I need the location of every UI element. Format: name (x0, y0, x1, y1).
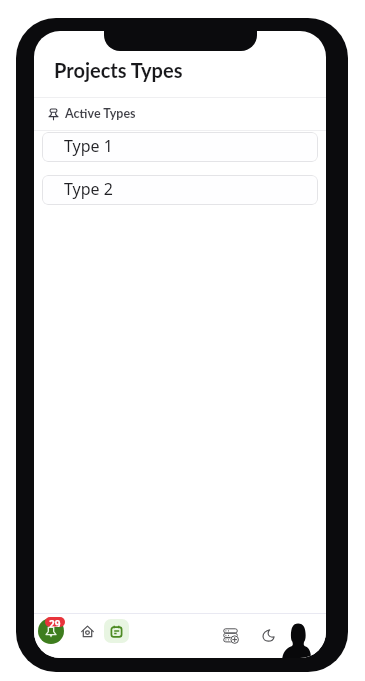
staticText: Active Types (65, 106, 136, 121)
staticText: Type 1 (64, 135, 113, 157)
staticText: 29 (49, 617, 61, 627)
button[interactable]: Type 1 (42, 132, 318, 162)
button[interactable]: Dark mode (255, 622, 281, 648)
staticText: Type 2 (64, 178, 113, 200)
button[interactable]: Projects (104, 619, 129, 643)
button[interactable]: Add data (212, 618, 238, 644)
button[interactable]: Profile (280, 620, 312, 658)
button[interactable]: Notifications (34, 614, 65, 645)
staticText: Projects Types (54, 58, 183, 82)
button[interactable]: Home (74, 618, 100, 644)
button[interactable]: Type 2 (42, 175, 318, 205)
